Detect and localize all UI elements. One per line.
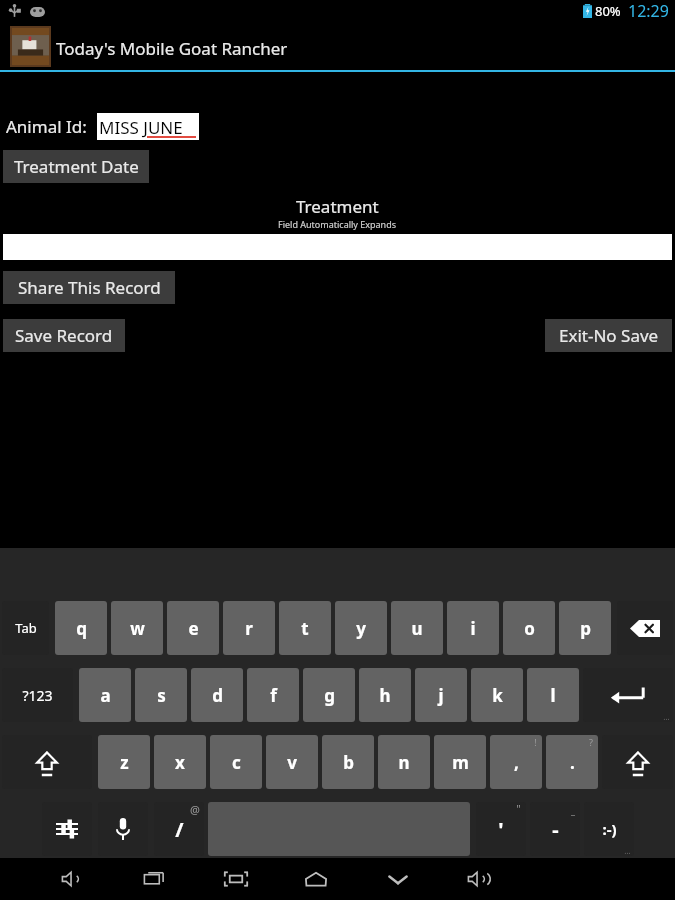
staticText: g xyxy=(324,684,335,707)
button[interactable]: a xyxy=(79,668,131,722)
button[interactable]: k xyxy=(471,668,523,722)
staticText: d xyxy=(212,684,223,707)
staticText: w xyxy=(130,617,145,640)
button[interactable]: c xyxy=(210,735,262,789)
button[interactable]: l xyxy=(527,668,579,722)
button[interactable]: s xyxy=(135,668,187,722)
button[interactable]: Symbols xyxy=(2,668,73,722)
button[interactable]: Emoticons xyxy=(584,802,634,856)
button[interactable]: g xyxy=(303,668,355,722)
button[interactable]: p xyxy=(559,601,611,655)
button[interactable]: Tab xyxy=(2,601,49,655)
button[interactable]: i xyxy=(447,601,499,655)
button[interactable]: Enter xyxy=(583,668,673,722)
staticText: @ xyxy=(190,802,200,817)
button[interactable]: , xyxy=(490,735,542,789)
button[interactable]: MISS JUNE xyxy=(97,113,199,140)
staticText: n xyxy=(398,751,410,774)
staticText: Animal Id: xyxy=(6,115,87,138)
staticText: b xyxy=(343,751,354,774)
button[interactable]: Apostrophe xyxy=(476,802,526,856)
button[interactable]: Resize screen xyxy=(219,862,253,896)
button[interactable]: Slash xyxy=(154,802,204,856)
button[interactable]: e xyxy=(167,601,219,655)
staticText: p xyxy=(580,617,591,640)
staticText: l xyxy=(550,684,556,707)
button[interactable]: x xyxy=(154,735,206,789)
button[interactable]: u xyxy=(391,601,443,655)
staticText: … xyxy=(624,845,631,856)
button[interactable]: n xyxy=(378,735,430,789)
staticText: :-) xyxy=(602,819,617,839)
staticText: x xyxy=(175,751,185,774)
staticText: k xyxy=(492,684,503,707)
button[interactable]: Volume down xyxy=(55,862,89,896)
staticText: ! xyxy=(534,736,537,748)
staticText: e xyxy=(188,617,199,640)
staticText: r xyxy=(245,617,253,640)
staticText: Field Automatically Expands xyxy=(278,218,397,230)
button[interactable]: Save Record xyxy=(3,319,125,352)
staticText: a xyxy=(100,684,111,707)
staticText: j xyxy=(438,684,444,707)
button[interactable]: f xyxy=(247,668,299,722)
staticText: . xyxy=(570,751,575,774)
button[interactable]: w xyxy=(111,601,163,655)
button[interactable]: App icon xyxy=(10,26,51,67)
button[interactable]: Shift xyxy=(602,735,673,789)
staticText: MISS JUNE xyxy=(99,116,183,139)
button[interactable]: t xyxy=(279,601,331,655)
button[interactable]: j xyxy=(415,668,467,722)
staticText: 80% xyxy=(595,2,621,20)
staticText: ' xyxy=(498,816,504,843)
staticText: h xyxy=(379,684,391,707)
staticText: s xyxy=(157,684,166,707)
staticText: Save Record xyxy=(15,324,113,347)
staticText: t xyxy=(301,617,309,640)
button[interactable]: Voice input xyxy=(98,802,148,856)
button[interactable]: m xyxy=(434,735,486,789)
button[interactable]: Shift xyxy=(2,735,92,789)
button[interactable]: Recent apps xyxy=(137,862,171,896)
staticText: c xyxy=(232,751,241,774)
staticText: f xyxy=(270,684,277,707)
staticText: y xyxy=(356,617,366,640)
button[interactable]: Hide keyboard xyxy=(381,862,415,896)
button[interactable]: Treatment Date xyxy=(3,150,149,183)
staticText: z xyxy=(120,751,129,774)
button[interactable]: o xyxy=(503,601,555,655)
button[interactable]: v xyxy=(266,735,318,789)
button[interactable]: r xyxy=(223,601,275,655)
staticText: q xyxy=(76,617,87,640)
button[interactable]: z xyxy=(98,735,150,789)
staticText: Treatment xyxy=(296,195,379,218)
button[interactable]: Home xyxy=(299,862,333,896)
staticText: " xyxy=(516,802,521,816)
staticText: - xyxy=(552,816,559,843)
staticText: Tab xyxy=(15,619,37,637)
button[interactable]: Volume up xyxy=(461,862,495,896)
button[interactable]: Backspace xyxy=(617,601,673,655)
staticText: m xyxy=(452,751,469,774)
button[interactable]: . xyxy=(546,735,598,789)
staticText: , xyxy=(514,751,519,774)
button[interactable]: d xyxy=(191,668,243,722)
staticText: 12:29 xyxy=(628,0,669,22)
staticText: ? xyxy=(589,736,593,748)
staticText: ?123 xyxy=(22,686,53,705)
button[interactable]: Share This Record xyxy=(3,271,175,304)
staticText: … xyxy=(663,711,670,722)
button[interactable]: y xyxy=(335,601,387,655)
staticText: i xyxy=(470,617,476,640)
staticText: Treatment Date xyxy=(14,155,139,178)
button[interactable]: b xyxy=(322,735,374,789)
staticText: Today's Mobile Goat Rancher xyxy=(56,37,288,60)
button[interactable]: Hyphen xyxy=(530,802,580,856)
staticText: v xyxy=(287,751,297,774)
button[interactable]: Keyboard settings xyxy=(42,802,92,856)
button[interactable]: q xyxy=(55,601,107,655)
button[interactable]: h xyxy=(359,668,411,722)
button[interactable]: Exit-No Save xyxy=(545,319,672,352)
